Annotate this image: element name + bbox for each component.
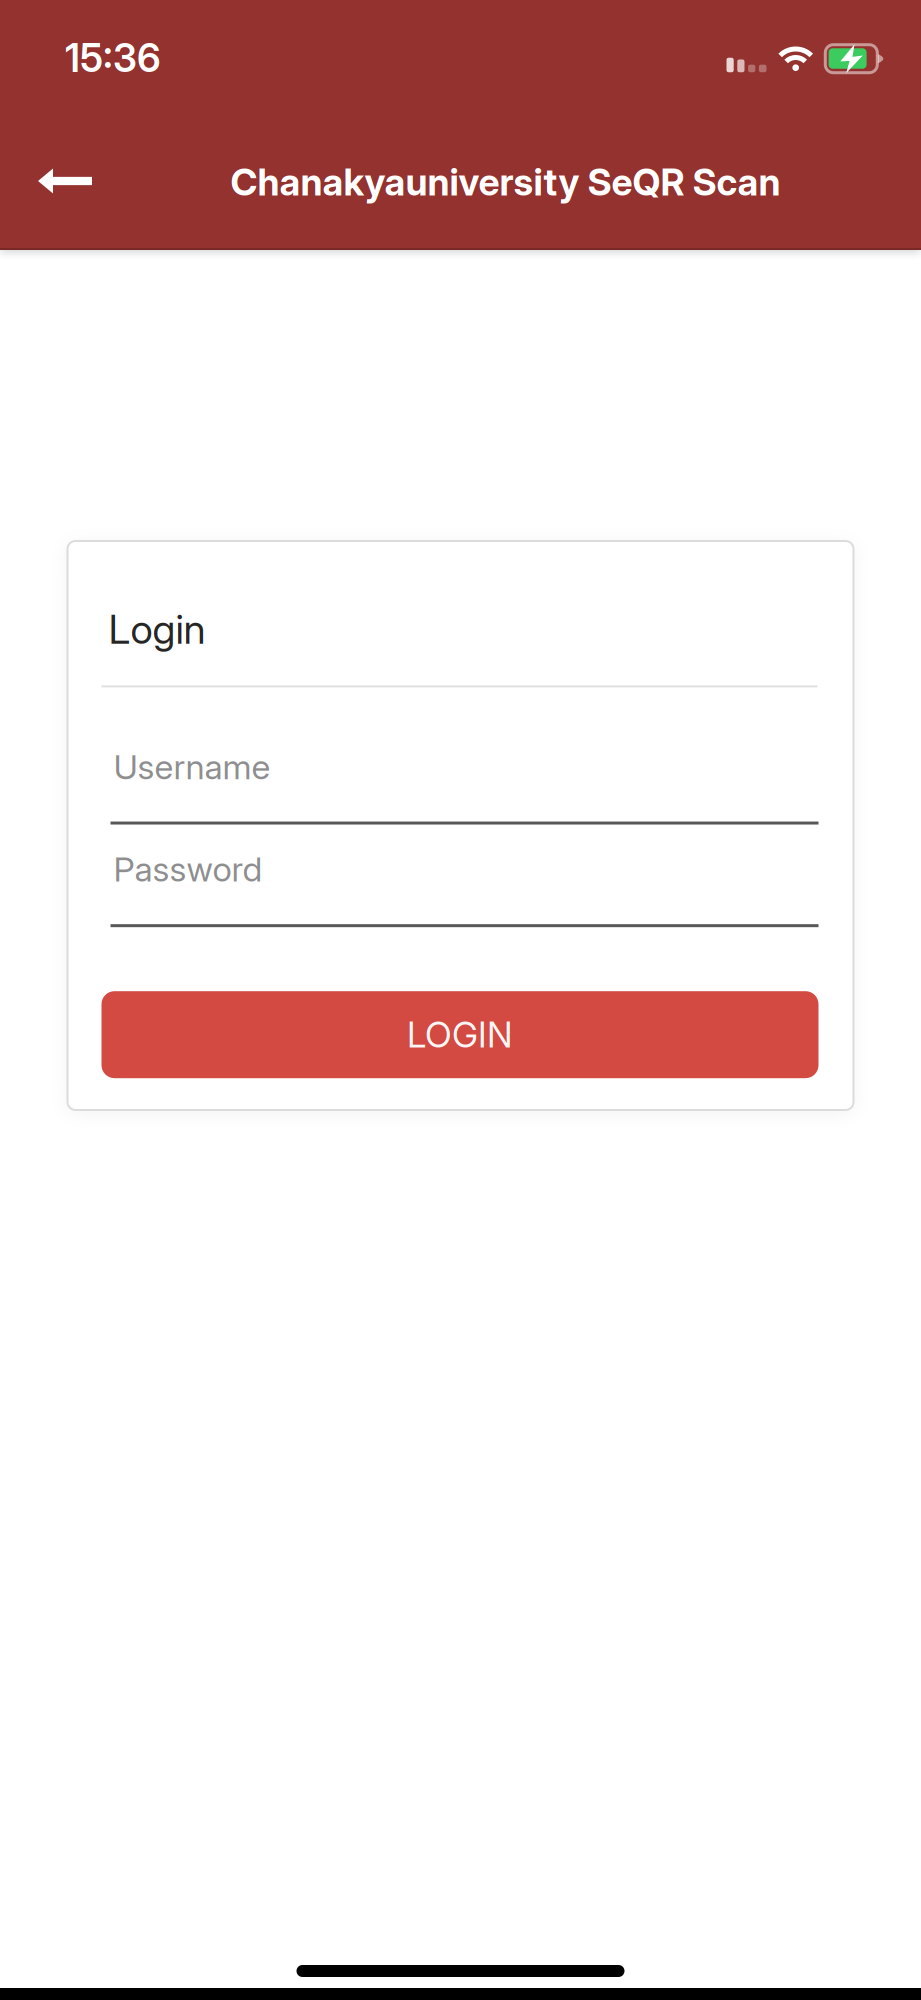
button[interactable]: Username bbox=[101, 746, 819, 824]
staticText: Password bbox=[113, 848, 262, 890]
staticText: Username bbox=[113, 746, 270, 787]
button[interactable]: Password bbox=[101, 848, 819, 927]
staticText: Chanakyauniversity SeQR Scan bbox=[230, 160, 780, 204]
staticText: 15:36 bbox=[65, 35, 161, 81]
button[interactable]: Back bbox=[22, 148, 108, 213]
button[interactable]: LOGIN bbox=[101, 991, 818, 1078]
staticText: Login bbox=[108, 605, 205, 653]
staticText: LOGIN bbox=[407, 1013, 513, 1056]
